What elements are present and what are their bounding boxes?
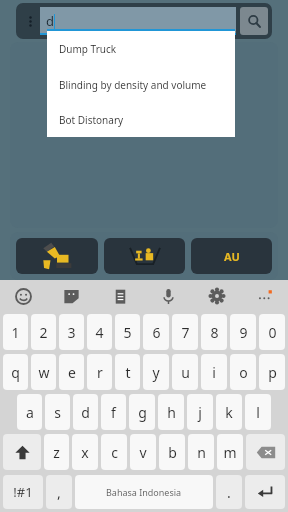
staticText: 8: [210, 323, 219, 342]
staticText: i: [212, 363, 216, 382]
staticText: 5: [123, 323, 132, 342]
button[interactable]: More options: [20, 7, 40, 35]
button[interactable]: Stickers: [56, 281, 86, 311]
button[interactable]: p: [259, 354, 285, 390]
staticText: 4: [95, 323, 104, 342]
button[interactable]: j: [187, 394, 213, 430]
button[interactable]: c: [101, 434, 127, 470]
button[interactable]: q: [3, 354, 28, 390]
button[interactable]: z: [44, 434, 69, 470]
button[interactable]: [16, 238, 98, 274]
staticText: d: [81, 403, 90, 422]
staticText: a: [26, 403, 34, 422]
button[interactable]: .: [216, 475, 242, 509]
staticText: d: [46, 12, 54, 30]
staticText: r: [97, 363, 103, 382]
button[interactable]: 2: [31, 314, 56, 350]
staticText: Bahasa Indonesia: [106, 486, 182, 498]
button[interactable]: h: [158, 394, 184, 430]
button[interactable]: Bahasa Indonesia: [75, 475, 213, 509]
staticText: u: [181, 363, 190, 382]
button[interactable]: i: [201, 354, 227, 390]
button[interactable]: [104, 238, 185, 274]
staticText: k: [225, 403, 233, 422]
button[interactable]: l: [245, 394, 271, 430]
button[interactable]: Clipboard: [105, 281, 135, 311]
button[interactable]: g: [129, 394, 155, 430]
button[interactable]: Emoji: [8, 281, 38, 311]
staticText: MINING: [111, 77, 177, 97]
button[interactable]: b: [159, 434, 185, 470]
button[interactable]: d: [73, 394, 98, 430]
button[interactable]: Dump Truck: [47, 31, 235, 67]
button[interactable]: 4: [87, 314, 112, 350]
button[interactable]: AU: [191, 238, 272, 274]
staticText: n: [197, 443, 206, 462]
staticText: b: [168, 443, 177, 462]
button[interactable]: r: [87, 354, 112, 390]
button[interactable]: t: [115, 354, 140, 390]
button[interactable]: a: [17, 394, 42, 430]
button[interactable]: Keyboard settings: [202, 281, 232, 311]
staticText: Blinding by density and volume: [59, 78, 207, 92]
staticText: g: [138, 403, 147, 422]
staticText: x: [81, 443, 89, 462]
button[interactable]: !#1: [3, 475, 43, 509]
staticText: !#1: [13, 483, 33, 501]
button[interactable]: Backspace: [246, 434, 285, 470]
button[interactable]: 9: [230, 314, 256, 350]
button[interactable]: Search: [240, 7, 268, 35]
button[interactable]: y: [143, 354, 169, 390]
button[interactable]: k: [216, 394, 242, 430]
staticText: 3: [67, 323, 76, 342]
button[interactable]: w: [31, 354, 56, 390]
staticText: t: [125, 363, 131, 382]
button[interactable]: More options: [250, 281, 280, 311]
button[interactable]: Voice input: [153, 281, 183, 311]
button[interactable]: u: [172, 354, 198, 390]
button[interactable]: 1: [3, 314, 28, 350]
staticText: s: [54, 403, 61, 422]
button[interactable]: 8: [201, 314, 227, 350]
staticText: j: [198, 403, 202, 422]
button[interactable]: Bot Distonary: [47, 102, 235, 137]
button[interactable]: v: [130, 434, 156, 470]
staticText: 7: [181, 323, 190, 342]
button[interactable]: 5: [115, 314, 140, 350]
staticText: h: [167, 403, 176, 422]
button[interactable]: d: [40, 7, 236, 35]
staticText: m: [223, 443, 237, 462]
staticText: q: [11, 363, 20, 382]
staticText: c: [111, 443, 118, 462]
button[interactable]: m: [217, 434, 243, 470]
staticText: o: [239, 363, 248, 382]
staticText: 2: [39, 323, 48, 342]
button[interactable]: Blinding by density and volume: [47, 67, 235, 102]
button[interactable]: Enter: [245, 475, 285, 509]
staticText: 9: [239, 323, 248, 342]
button[interactable]: e: [59, 354, 84, 390]
button[interactable]: f: [101, 394, 126, 430]
staticText: z: [53, 443, 60, 462]
button[interactable]: Shift: [3, 434, 41, 470]
staticText: Dump Truck: [59, 42, 117, 56]
staticText: AU: [224, 249, 240, 264]
button[interactable]: 3: [59, 314, 84, 350]
button[interactable]: 6: [143, 314, 169, 350]
button[interactable]: s: [45, 394, 70, 430]
staticText: w: [38, 363, 50, 382]
staticText: 6: [152, 323, 161, 342]
staticText: v: [139, 443, 147, 462]
button[interactable]: o: [230, 354, 256, 390]
staticText: p: [268, 363, 277, 382]
button[interactable]: 7: [172, 314, 198, 350]
button[interactable]: 0: [259, 314, 285, 350]
button[interactable]: n: [188, 434, 214, 470]
button[interactable]: ,: [46, 475, 72, 509]
staticText: l: [256, 403, 260, 422]
button[interactable]: x: [72, 434, 98, 470]
staticText: f: [111, 403, 116, 422]
staticText: e: [68, 363, 76, 382]
staticText: Bot Distonary: [59, 113, 124, 127]
